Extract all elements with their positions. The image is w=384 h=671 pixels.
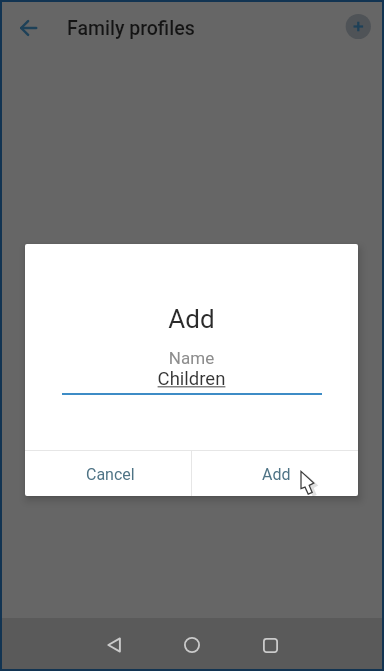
staticText: Family profiles [67, 17, 195, 40]
button[interactable]: Add [192, 451, 358, 496]
button[interactable]: Navigate up [5, 5, 53, 53]
staticText: Cancel [86, 465, 135, 484]
button[interactable]: Home [168, 621, 216, 669]
button[interactable]: Cancel [25, 451, 191, 496]
button[interactable]: Back [90, 621, 138, 669]
staticText: Add [262, 465, 291, 484]
staticText: Add [25, 304, 358, 334]
staticText: Name [25, 348, 358, 368]
button[interactable]: Add profile [334, 2, 384, 54]
staticText: Children [25, 368, 358, 390]
button[interactable]: Recent apps [246, 621, 294, 669]
